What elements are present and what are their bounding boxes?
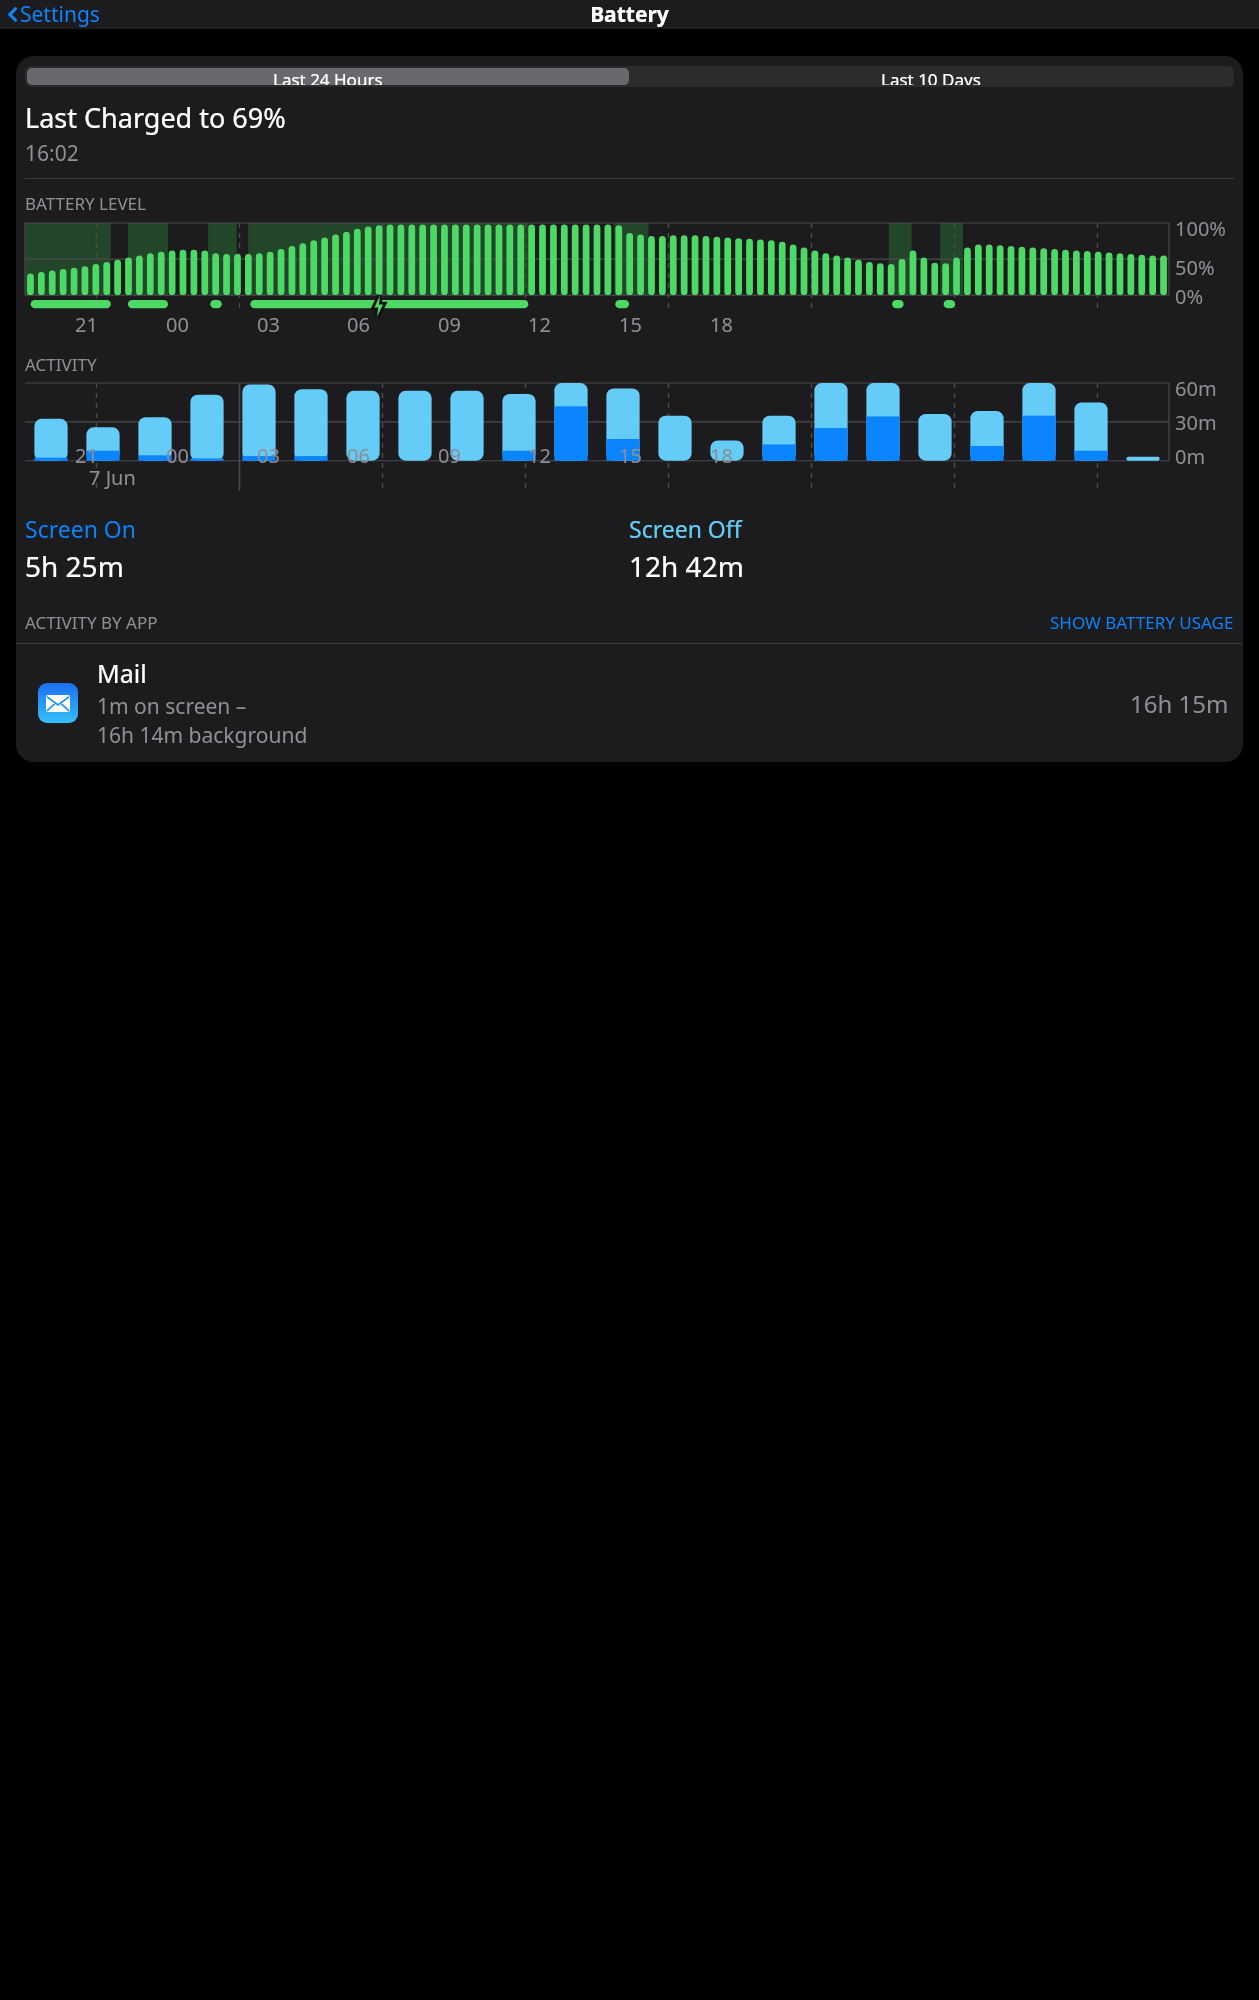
- staticText: 15: [619, 311, 642, 333]
- staticText: 100%: [1175, 215, 1226, 242]
- staticText: 18: [710, 442, 733, 464]
- staticText: 06: [347, 442, 370, 464]
- staticText: ACTIVITY: [25, 353, 97, 376]
- button[interactable]: Back to Settings: [9, 0, 100, 29]
- staticText: 09: [438, 442, 461, 464]
- staticText: 18: [710, 311, 733, 333]
- staticText: 00: [166, 311, 189, 333]
- staticText: 21: [75, 311, 98, 333]
- button[interactable]: Mail: [16, 644, 1243, 762]
- staticText: 12: [528, 442, 551, 464]
- staticText: 0%: [1175, 283, 1204, 310]
- staticText: 1m on screen –: [97, 692, 247, 721]
- staticText: 09: [438, 311, 461, 333]
- staticText: 0m: [1175, 443, 1206, 470]
- button[interactable]: Last 24 Hours: [27, 68, 629, 85]
- button[interactable]: Last 10 Days: [629, 68, 1232, 85]
- staticText: Screen Off: [629, 513, 742, 544]
- staticText: 03: [257, 311, 280, 333]
- staticText: 16h 14m background: [97, 721, 308, 750]
- staticText: Last Charged to 69%: [25, 99, 286, 136]
- staticText: ACTIVITY BY APP: [25, 611, 158, 634]
- staticText: 60m: [1175, 375, 1217, 402]
- staticText: 00: [166, 442, 189, 464]
- staticText: Last 24 Hours: [273, 68, 383, 85]
- staticText: 50%: [1175, 254, 1215, 281]
- staticText: 03: [257, 442, 280, 464]
- staticText: BATTERY LEVEL: [25, 192, 146, 215]
- staticText: 06: [347, 311, 370, 333]
- button[interactable]: SHOW BATTERY USAGE: [1050, 611, 1234, 634]
- staticText: Last 10 Days: [881, 68, 981, 85]
- staticText: SHOW BATTERY USAGE: [1050, 611, 1234, 634]
- staticText: 5h 25m: [25, 547, 124, 585]
- staticText: 15: [619, 442, 642, 464]
- staticText: Battery: [590, 0, 669, 29]
- staticText: 12h 42m: [629, 547, 744, 585]
- staticText: 16:02: [25, 139, 79, 168]
- staticText: 30m: [1175, 409, 1217, 436]
- staticText: 21: [75, 442, 98, 464]
- staticText: Settings: [20, 0, 100, 29]
- staticText: 16h 15m: [1130, 687, 1229, 720]
- staticText: 7 Jun: [89, 464, 136, 491]
- staticText: Mail: [97, 656, 147, 690]
- staticText: 12: [528, 311, 551, 333]
- staticText: Screen On: [25, 513, 137, 544]
